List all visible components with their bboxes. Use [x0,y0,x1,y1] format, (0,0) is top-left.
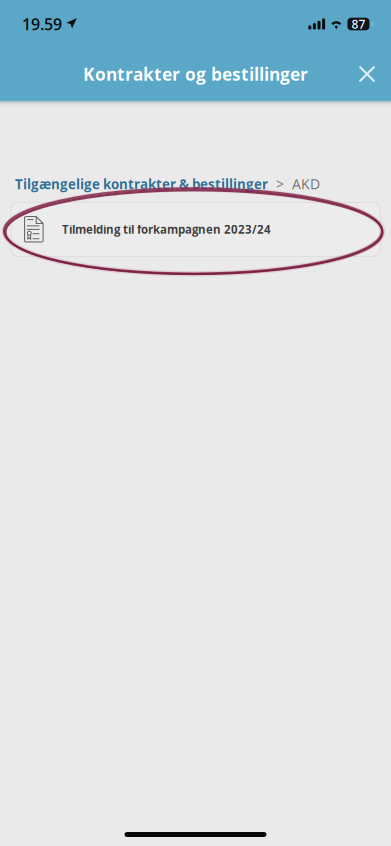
staticText: > [268,174,292,193]
button[interactable]: Tilgængelige kontrakter & bestillinger [15,175,268,193]
staticText: 87 [351,16,365,32]
staticText: AKD [292,174,320,193]
button[interactable]: Tilmelding til forkampagnen 2023/24 [11,202,380,256]
staticText: Tilmelding til forkampagnen 2023/24 [62,222,271,237]
staticText: Tilgængelige kontrakter & bestillinger [15,175,268,193]
staticText: 19.59 [22,13,62,35]
button[interactable]: Luk [345,52,389,96]
staticText: Kontrakter og bestillinger [83,62,308,86]
